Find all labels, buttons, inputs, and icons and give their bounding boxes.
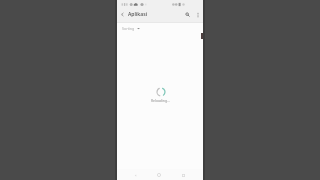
button[interactable]: Search xyxy=(182,8,193,21)
staticText: Reloading... xyxy=(151,98,170,103)
button[interactable]: More options xyxy=(193,8,202,21)
button[interactable]: Sorting xyxy=(122,26,140,31)
staticText: Aplikasi xyxy=(128,11,148,18)
staticText: Sorting xyxy=(122,26,135,31)
button[interactable]: Recent apps xyxy=(178,170,188,180)
button[interactable]: Back xyxy=(117,8,128,21)
button[interactable]: Home xyxy=(154,170,164,180)
